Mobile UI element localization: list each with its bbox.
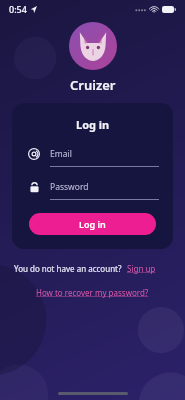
button[interactable]: Sign up bbox=[127, 263, 156, 274]
button[interactable]: Log in bbox=[29, 213, 156, 235]
staticText: You do not have an account? bbox=[14, 263, 122, 274]
staticText: 0:54 bbox=[9, 3, 27, 15]
button[interactable]: How to recover my password? bbox=[36, 287, 149, 298]
button[interactable]: Email bbox=[26, 146, 159, 167]
staticText: Sign up bbox=[127, 263, 156, 274]
staticText: How to recover my password? bbox=[36, 287, 149, 298]
staticText: Password bbox=[50, 181, 89, 193]
staticText: Log in bbox=[79, 218, 106, 230]
staticText: Cruizer bbox=[70, 76, 116, 94]
button[interactable]: Password bbox=[26, 179, 159, 200]
staticText: Email bbox=[50, 148, 72, 160]
staticText: Log in bbox=[76, 117, 110, 132]
